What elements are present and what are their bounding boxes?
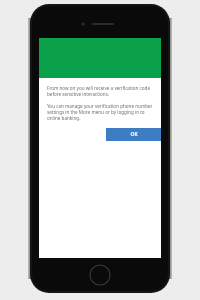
button[interactable]: Home [88, 263, 112, 287]
staticText: OK [130, 131, 138, 138]
staticText: You can manage your verification phone n… [47, 103, 153, 121]
staticText: From now on you will receive a verificat… [47, 85, 153, 97]
button[interactable]: OK [106, 128, 161, 141]
